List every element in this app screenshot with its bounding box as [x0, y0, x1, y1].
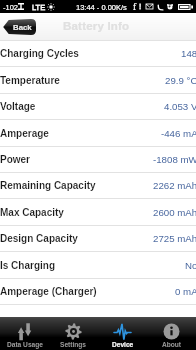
button[interactable]: Data Usage [0, 317, 49, 350]
staticText: Voltage [0, 101, 36, 112]
staticText: Amperage [0, 128, 49, 139]
staticText: ! [139, 2, 142, 11]
button[interactable]: Temperature [0, 66, 196, 93]
staticText: -446 mA [161, 128, 196, 139]
button[interactable]: Max Capacity [0, 198, 196, 225]
staticText: 148 [181, 48, 196, 59]
staticText: Power [0, 154, 31, 165]
button[interactable]: Voltage [0, 93, 196, 119]
staticText: Design Capacity [0, 233, 78, 244]
staticText: 2600 mAh [153, 207, 196, 218]
staticText: Amperage (Charger) [0, 286, 97, 297]
staticText: Settings [60, 341, 87, 348]
staticText: -102 [3, 3, 19, 11]
button[interactable]: Remaining Capacity [0, 172, 196, 198]
button[interactable]: Power [0, 146, 196, 172]
staticText: 2262 mAh [153, 180, 196, 191]
staticText: Max Capacity [0, 207, 64, 218]
staticText: Battery Info [63, 20, 130, 33]
button[interactable]: Settings [49, 317, 98, 350]
staticText: Device [112, 341, 134, 348]
staticText: Back [13, 23, 32, 32]
button[interactable]: Charging Cycles [0, 40, 196, 66]
staticText: About [162, 341, 182, 348]
staticText: LTE [32, 3, 46, 11]
staticText: f [133, 1, 136, 12]
button[interactable]: Device [98, 317, 147, 350]
staticText: 4.053 V [164, 101, 196, 112]
button[interactable]: Amperage [0, 119, 196, 146]
button[interactable]: About [147, 317, 196, 350]
staticText: 29.9 °C [165, 75, 196, 86]
staticText: Temperature [0, 75, 60, 86]
button[interactable]: Is Charging [0, 251, 196, 278]
staticText: Charging Cycles [0, 48, 79, 59]
staticText: 13:44 - 0.00K/s [76, 3, 127, 11]
staticText: Data Usage [7, 341, 43, 348]
staticText: 0 mA [175, 286, 196, 297]
button[interactable]: Back [2, 19, 36, 35]
staticText: No [185, 260, 196, 271]
button[interactable]: Amperage (Charger) [0, 278, 196, 304]
staticText: Remaining Capacity [0, 180, 96, 191]
staticText: Is Charging [0, 260, 56, 271]
staticText: 2725 mAh [153, 233, 196, 244]
staticText: -1808 mW [153, 154, 196, 165]
button[interactable]: Design Capacity [0, 225, 196, 251]
